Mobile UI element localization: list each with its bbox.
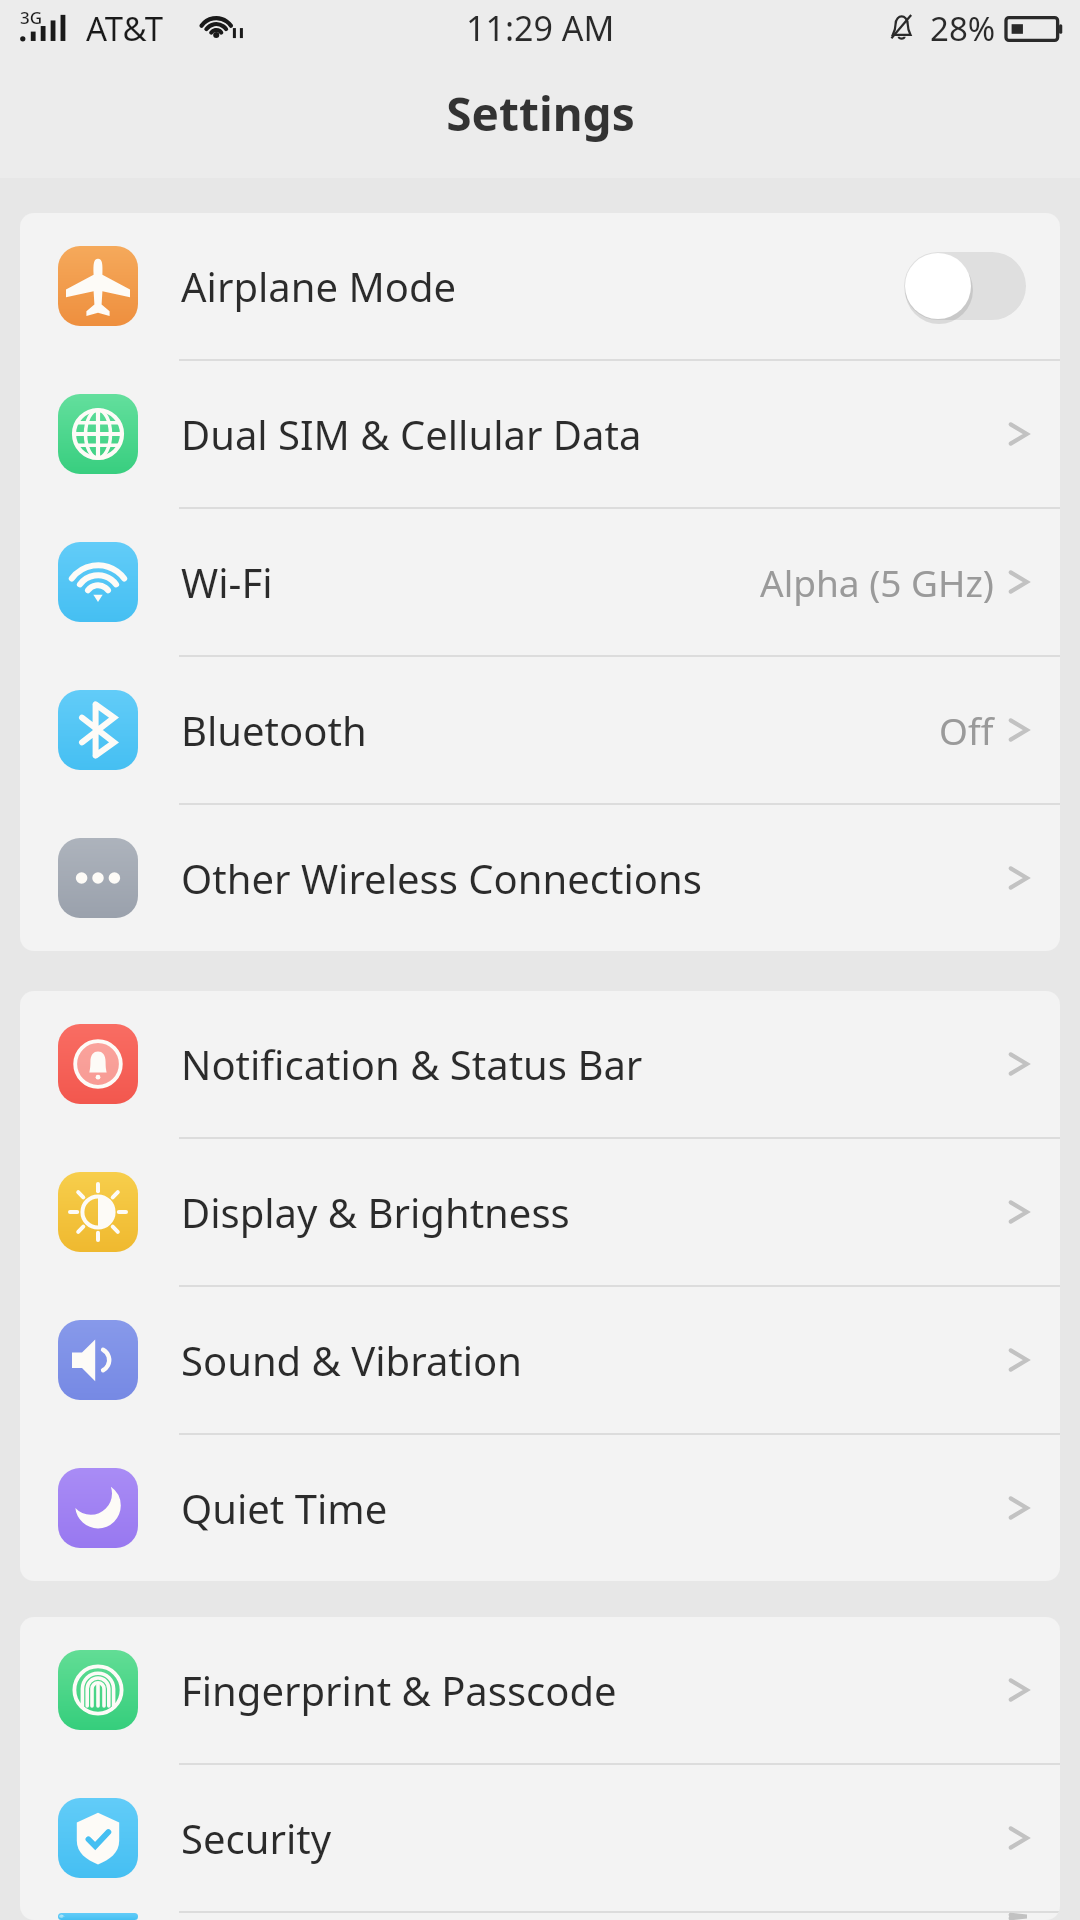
button[interactable]: Wi-Fi: [20, 509, 1060, 657]
button[interactable]: Other Wireless Connections: [20, 805, 1060, 951]
button[interactable]: Quiet Time: [20, 1435, 1060, 1581]
staticText: Quiet Time: [181, 1481, 1006, 1535]
button[interactable]: Security: [20, 1765, 1060, 1913]
staticText: Settings: [446, 82, 635, 145]
staticText: Wi-Fi: [181, 555, 760, 609]
staticText: Security: [181, 1811, 1006, 1865]
button[interactable]: Sound & Vibration: [20, 1287, 1060, 1435]
staticText: Other Wireless Connections: [181, 851, 1006, 905]
staticText: Notification & Status Bar: [181, 1037, 1006, 1091]
staticText: Airplane Mode: [181, 259, 904, 313]
staticText: Alpha (5 GHz): [760, 557, 994, 607]
staticText: 3G: [20, 6, 43, 29]
staticText: Off: [939, 705, 994, 755]
button[interactable]: Display & Brightness: [20, 1139, 1060, 1287]
staticText: AT&T: [86, 6, 163, 51]
staticText: 11:29 AM: [466, 5, 615, 51]
staticText: Dual SIM & Cellular Data: [181, 407, 1006, 461]
staticText: Fingerprint & Passcode: [181, 1663, 1006, 1717]
staticText: Bluetooth: [181, 703, 939, 757]
staticText: Sound & Vibration: [181, 1333, 1006, 1387]
button[interactable]: Notification & Status Bar: [20, 991, 1060, 1139]
button[interactable]: Privacy: [20, 1913, 1060, 1920]
staticText: 28%: [930, 6, 996, 51]
button[interactable]: Bluetooth: [20, 657, 1060, 805]
button[interactable]: Dual SIM & Cellular Data: [20, 361, 1060, 509]
staticText: Display & Brightness: [181, 1185, 1006, 1239]
button[interactable]: Airplane Mode: [20, 213, 1060, 361]
button[interactable]: Fingerprint & Passcode: [20, 1617, 1060, 1765]
